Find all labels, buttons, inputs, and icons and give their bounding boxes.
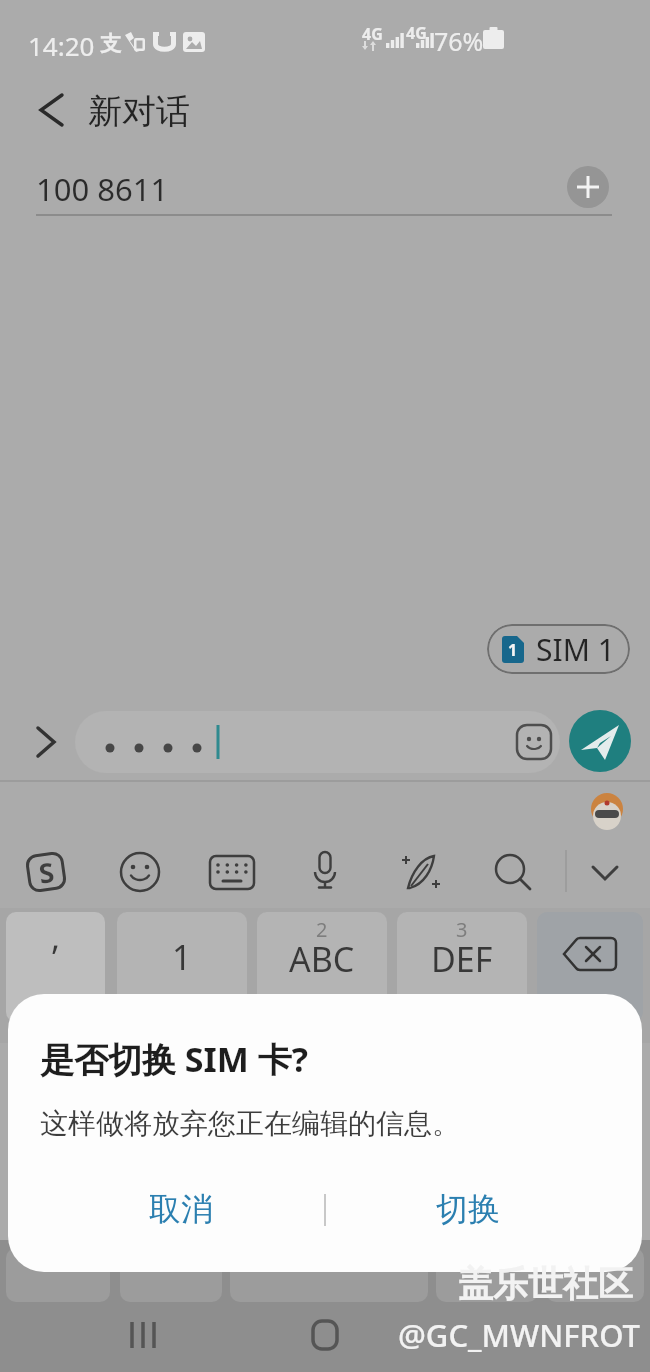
button[interactable] [491,850,535,894]
button[interactable] [569,710,631,772]
button[interactable] [26,722,66,762]
button[interactable] [303,850,347,894]
button[interactable]: S [24,850,68,894]
staticText: 支 [100,31,121,57]
staticText: @GC_MWNFROT [398,1314,640,1356]
staticText: 4G [362,23,383,45]
button[interactable]: 切换 [355,1176,581,1242]
staticText: , [51,914,61,960]
button[interactable] [398,850,444,896]
staticText: 2 [316,916,328,943]
staticText: ABC [289,936,355,982]
button[interactable]: 1 [117,912,247,1022]
button[interactable] [209,850,255,896]
button[interactable] [567,166,609,208]
staticText: 100 8611 [36,168,169,210]
button[interactable] [583,850,627,894]
staticText: 1 [172,934,192,980]
button[interactable]: 取消 [68,1176,294,1242]
staticText: 这样做将放弃您正在编辑的信息。 [40,1106,460,1141]
button[interactable]: , [6,912,105,1022]
staticText: 76% [434,24,484,58]
staticText: 14:20 [28,28,95,63]
button[interactable] [537,912,643,1022]
staticText: 3 [456,916,468,943]
button[interactable]: 1 [487,624,630,674]
staticText: SIM 1 [536,629,615,670]
button[interactable]: 3 [397,912,527,1022]
staticText: 是否切换 SIM 卡? [40,1036,308,1082]
button[interactable] [305,1316,345,1356]
staticText: 盖乐世社区 [458,1262,633,1306]
staticText: 取消 [149,1189,213,1229]
staticText: S [37,853,57,892]
staticText: 新对话 [88,90,190,133]
staticText: 4G [406,22,427,44]
button[interactable] [118,850,162,894]
button[interactable] [28,86,76,134]
button[interactable]: 2 [257,912,387,1022]
staticText: 切换 [436,1189,500,1229]
button[interactable] [120,1316,170,1356]
staticText: DEF [431,936,493,982]
staticText: 1 [508,639,518,661]
button[interactable] [75,711,560,773]
